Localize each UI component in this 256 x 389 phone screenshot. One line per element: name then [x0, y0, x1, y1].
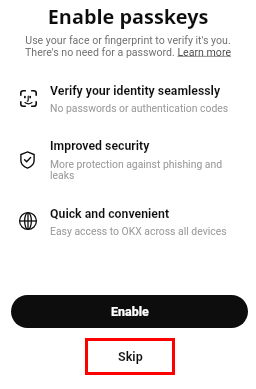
staticText: No passwords or authentication codes [50, 102, 236, 114]
button[interactable]: Skip [85, 338, 175, 375]
staticText: Enable passkeys [0, 3, 256, 30]
other: Globe [19, 212, 37, 230]
staticText: Improved security [50, 139, 150, 153]
staticText: Skip [118, 349, 143, 364]
staticText: Verify your identity seamlessly [50, 84, 221, 98]
staticText: Use your face or fingerprint to verify i… [0, 34, 256, 58]
staticText: More protection against phishing and lea… [50, 158, 236, 181]
button[interactable]: Enable [11, 295, 248, 328]
staticText: Quick and convenient [50, 207, 170, 221]
staticText: Easy access to OKX across all devices [50, 225, 236, 237]
staticText: Enable [111, 304, 149, 319]
other: Security shield [20, 151, 35, 169]
other: Face recognition [20, 90, 37, 107]
